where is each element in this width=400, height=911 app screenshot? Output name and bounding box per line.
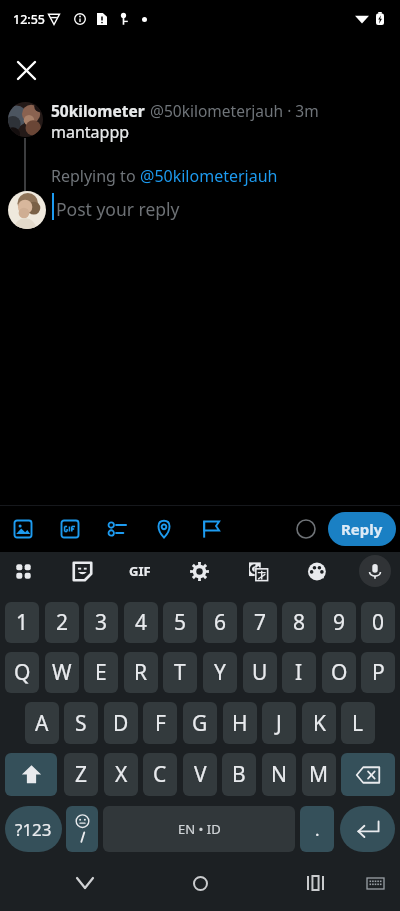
button[interactable]: Replying to: [51, 165, 278, 187]
staticText: @50kilometerjauh · 3m: [150, 100, 319, 121]
button[interactable]: 3: [84, 602, 118, 643]
staticText: W: [52, 658, 72, 687]
button[interactable]: Recent apps: [292, 855, 338, 911]
button[interactable]: Z: [64, 753, 98, 796]
button[interactable]: J: [262, 702, 296, 744]
button[interactable]: Voice input: [359, 555, 391, 587]
staticText: O: [331, 658, 348, 687]
button[interactable]: Apps: [6, 554, 40, 588]
button[interactable]: Theme: [300, 554, 334, 588]
staticText: 9: [333, 608, 346, 637]
button[interactable]: S: [64, 702, 98, 744]
button[interactable]: Back: [62, 855, 108, 911]
button[interactable]: Add photo: [0, 506, 46, 552]
button[interactable]: 8: [282, 602, 316, 643]
button[interactable]: 6: [203, 602, 237, 643]
button[interactable]: Shift: [5, 753, 57, 796]
staticText: Reply: [341, 519, 383, 539]
staticText: U: [252, 658, 268, 687]
staticText: 7: [254, 608, 267, 637]
button[interactable]: 5: [163, 602, 197, 643]
button[interactable]: V: [183, 753, 217, 796]
staticText: J: [276, 709, 282, 738]
button[interactable]: Q: [5, 652, 39, 693]
button[interactable]: Close: [4, 48, 48, 92]
button[interactable]: Translate: [241, 554, 275, 588]
button[interactable]: Add poll: [94, 506, 140, 552]
button[interactable]: Backspace: [341, 753, 395, 796]
staticText: 1: [16, 608, 29, 637]
button[interactable]: D: [104, 702, 138, 744]
staticText: S: [75, 709, 87, 738]
button[interactable]: Profile picture: [8, 102, 43, 137]
button[interactable]: Symbols: [5, 806, 62, 852]
button[interactable]: Reply: [328, 512, 396, 546]
staticText: R: [134, 658, 148, 687]
button[interactable]: K: [302, 702, 336, 744]
staticText: Replying to: [51, 165, 140, 187]
staticText: GIF: [129, 562, 151, 580]
button[interactable]: 9: [322, 602, 356, 643]
button[interactable]: Emoji: [66, 806, 98, 852]
staticText: 12:55: [13, 11, 46, 28]
staticText: 0: [372, 608, 385, 637]
button[interactable]: W: [45, 652, 79, 693]
staticText: .: [315, 818, 320, 841]
button[interactable]: G: [183, 702, 217, 744]
button[interactable]: 2: [45, 602, 79, 643]
button[interactable]: L: [341, 702, 375, 744]
button[interactable]: Home: [177, 855, 223, 911]
staticText: EN • ID: [178, 820, 221, 838]
button[interactable]: I: [282, 652, 316, 693]
staticText: F: [155, 709, 166, 738]
staticText: M: [309, 760, 329, 789]
staticText: 2: [56, 608, 69, 637]
button[interactable]: H: [223, 702, 257, 744]
button[interactable]: Period: [300, 806, 334, 852]
staticText: 6: [214, 608, 227, 637]
staticText: ?123: [15, 818, 52, 841]
button[interactable]: Y: [203, 652, 237, 693]
button[interactable]: E: [84, 652, 118, 693]
button[interactable]: Stickers: [65, 554, 99, 588]
button[interactable]: Add location: [141, 506, 187, 552]
button[interactable]: R: [124, 652, 158, 693]
button[interactable]: M: [302, 753, 336, 796]
button[interactable]: 7: [243, 602, 277, 643]
staticText: 8: [293, 608, 306, 637]
button[interactable]: Space: [103, 806, 295, 852]
button[interactable]: 4: [124, 602, 158, 643]
button[interactable]: A: [25, 702, 59, 744]
staticText: 5: [174, 608, 187, 637]
button[interactable]: Character count: [288, 511, 324, 547]
button[interactable]: Add GIF: [47, 506, 93, 552]
button[interactable]: 1: [5, 602, 39, 643]
staticText: D: [113, 709, 129, 738]
button[interactable]: Your profile picture: [8, 191, 46, 229]
staticText: T: [174, 658, 186, 687]
button[interactable]: X: [104, 753, 138, 796]
staticText: 50kilometer: [51, 100, 145, 121]
button[interactable]: C: [143, 753, 177, 796]
staticText: H: [232, 709, 248, 738]
button[interactable]: Switch keyboard: [352, 855, 398, 911]
staticText: P: [372, 658, 385, 687]
button[interactable]: 0: [361, 602, 395, 643]
button[interactable]: F: [143, 702, 177, 744]
button[interactable]: Highlight: [188, 506, 234, 552]
staticText: A: [35, 709, 49, 738]
staticText: K: [313, 709, 326, 738]
button[interactable]: N: [262, 753, 296, 796]
button[interactable]: U: [243, 652, 277, 693]
button[interactable]: B: [222, 753, 256, 796]
button[interactable]: Post your reply: [56, 197, 180, 221]
staticText: Z: [75, 760, 88, 789]
button[interactable]: Settings: [182, 554, 216, 588]
button[interactable]: P: [361, 652, 395, 693]
staticText: B: [232, 760, 246, 789]
button[interactable]: Enter: [340, 806, 395, 852]
staticText: N: [271, 760, 287, 789]
button[interactable]: T: [163, 652, 197, 693]
button[interactable]: GIF: [123, 554, 157, 588]
button[interactable]: O: [322, 652, 356, 693]
